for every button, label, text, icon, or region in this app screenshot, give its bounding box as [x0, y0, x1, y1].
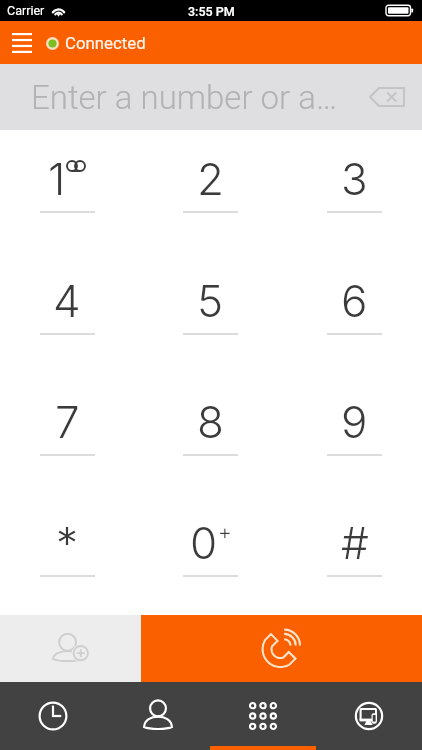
staticText: 5	[197, 274, 224, 327]
staticText: 8	[197, 395, 224, 448]
staticText: 7	[55, 395, 80, 448]
staticText: 4	[53, 274, 81, 327]
staticText: 2	[197, 152, 225, 205]
button[interactable]: 8	[140, 373, 281, 494]
staticText: +	[218, 519, 232, 544]
button[interactable]: 4	[0, 252, 140, 373]
button[interactable]: 5	[140, 252, 281, 373]
staticText: Connected	[65, 33, 146, 53]
button[interactable]: *	[0, 494, 140, 615]
button[interactable]: Menu	[0, 21, 43, 64]
staticText: 1	[48, 152, 66, 205]
button[interactable]: 3	[281, 130, 422, 252]
staticText: 0	[190, 516, 218, 569]
button[interactable]: 1	[0, 130, 140, 252]
button[interactable]: 9	[281, 373, 422, 494]
button[interactable]: Add contact	[0, 615, 141, 682]
staticText: Enter a number or a…	[31, 78, 338, 117]
staticText: 6	[341, 274, 368, 327]
button[interactable]: Contacts	[105, 682, 210, 750]
staticText: 3	[341, 152, 368, 205]
button[interactable]: 7	[0, 373, 140, 494]
button[interactable]: 0	[140, 494, 281, 615]
staticText: 9	[341, 395, 368, 448]
button[interactable]: Backspace	[361, 75, 413, 119]
button[interactable]: Recents	[0, 682, 105, 750]
button[interactable]: #	[281, 494, 422, 615]
button[interactable]: Call	[141, 615, 422, 682]
staticText: #	[341, 516, 369, 569]
button[interactable]: Devices	[316, 682, 422, 750]
button[interactable]: 2	[140, 130, 281, 252]
staticText: 3:55 PM	[188, 4, 235, 19]
staticText: Carrier	[7, 3, 45, 18]
button[interactable]: 6	[281, 252, 422, 373]
button[interactable]: Dialpad	[210, 682, 316, 750]
staticText: *	[56, 516, 79, 569]
